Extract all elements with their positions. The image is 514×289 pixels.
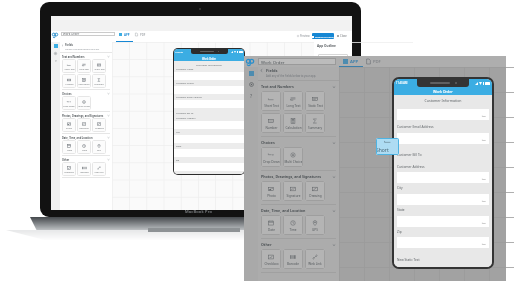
staticText: Work Order: [433, 89, 453, 94]
button[interactable]: Drop Down: [261, 147, 281, 167]
button[interactable]: APP: [343, 58, 359, 65]
button[interactable]: Static Text: [305, 91, 325, 111]
button[interactable]: Web Link: [305, 249, 325, 269]
button[interactable]: APP: [119, 32, 130, 37]
staticText: Photo: [66, 127, 72, 130]
staticText: Customer Bill To:: [397, 153, 423, 157]
button[interactable]: Barcode: [77, 162, 91, 176]
button[interactable]: Number: [261, 113, 281, 133]
button[interactable]: Long Text: [283, 91, 303, 111]
staticText: 11:45 AM: [175, 51, 183, 53]
staticText: Summary: [94, 83, 104, 86]
button[interactable]: Calculation: [283, 113, 303, 133]
staticText: Date: [268, 228, 275, 232]
staticText: App Outline: [317, 44, 336, 48]
button[interactable]: Number: [62, 74, 76, 88]
button[interactable]: Static Text: [92, 59, 106, 73]
button[interactable]: Short Text: [62, 59, 76, 73]
button[interactable]: Settings: [249, 82, 254, 87]
staticText: Web Link: [308, 262, 322, 266]
button[interactable]: Summary: [305, 113, 325, 133]
button[interactable]: Checkbox: [62, 162, 76, 176]
staticText: GPS: [312, 228, 318, 232]
button[interactable]: GPS: [92, 140, 106, 154]
staticText: Drawing: [95, 127, 104, 130]
staticText: Summary: [308, 126, 322, 130]
staticText: Customer Information: [394, 98, 492, 103]
staticText: Customer Phone: [176, 82, 194, 85]
button[interactable]: Date: [261, 215, 281, 235]
staticText: Date, Time, and Location: [261, 208, 332, 213]
button[interactable]: Time: [77, 140, 91, 154]
staticText: Time: [82, 149, 87, 152]
staticText: Customer Name: [176, 68, 194, 71]
staticText: APP: [124, 33, 130, 37]
button[interactable]: Calculation: [77, 74, 91, 88]
button[interactable]: Short Text: [376, 138, 399, 155]
staticText: Publish to Work: [315, 35, 334, 38]
staticText: Close: [340, 34, 347, 38]
button[interactable]: Help: [54, 59, 57, 62]
button[interactable]: Signature: [77, 118, 91, 132]
staticText: Customer Bill To:: [176, 112, 194, 115]
button[interactable]: Work Order: [61, 32, 115, 36]
staticText: Zip: [176, 159, 180, 162]
button[interactable]: Multi Choice: [283, 147, 303, 167]
staticText: Barcode: [287, 262, 299, 266]
button[interactable]: [397, 133, 489, 144]
button[interactable]: Publish to Work: [312, 33, 334, 39]
button[interactable]: + Add a screen: [318, 54, 348, 61]
staticText: Add any of the fields below to your app.: [266, 74, 317, 78]
button[interactable]: Photo: [261, 181, 281, 201]
button[interactable]: Preview: [297, 34, 310, 38]
staticText: Customer Address: [176, 117, 196, 120]
button[interactable]: Checkbox: [261, 249, 281, 269]
button[interactable]: Time: [283, 215, 303, 235]
button[interactable]: Signature: [283, 181, 303, 201]
staticText: Checkbox: [64, 171, 74, 174]
staticText: City: [397, 186, 403, 190]
button[interactable]: Multi Choice: [77, 96, 91, 110]
button[interactable]: Long Text: [77, 59, 91, 73]
staticText: Multi Choice: [284, 160, 303, 164]
button[interactable]: Work Order: [258, 58, 336, 65]
button[interactable]: Drawing: [305, 181, 325, 201]
staticText: Number: [265, 126, 278, 130]
button[interactable]: Barcode: [283, 249, 303, 269]
staticText: Fields: [266, 68, 278, 73]
button[interactable]: Drop Down: [62, 96, 76, 110]
staticText: Long Text: [286, 104, 301, 108]
button[interactable]: Photo: [62, 118, 76, 132]
button[interactable]: Settings: [54, 52, 57, 55]
button[interactable]: Drawing: [92, 118, 106, 132]
staticText: APP: [350, 59, 359, 65]
button[interactable]: Summary: [92, 74, 106, 88]
staticText: Barcode: [80, 171, 89, 174]
staticText: Other: [62, 158, 107, 161]
staticText: Customer Email Address: [397, 125, 434, 129]
button[interactable]: PDF: [135, 32, 146, 37]
button[interactable]: GPS: [305, 215, 325, 235]
staticText: + Add a screen: [324, 56, 342, 59]
button[interactable]: Close: [337, 34, 347, 38]
button[interactable]: Short Text: [261, 91, 281, 111]
button[interactable]: Help: [249, 93, 254, 98]
staticText: Preview: [300, 34, 310, 38]
button[interactable]: PDF: [366, 58, 381, 65]
button[interactable]: Date: [62, 140, 76, 154]
button[interactable]: Web Link: [92, 162, 106, 176]
